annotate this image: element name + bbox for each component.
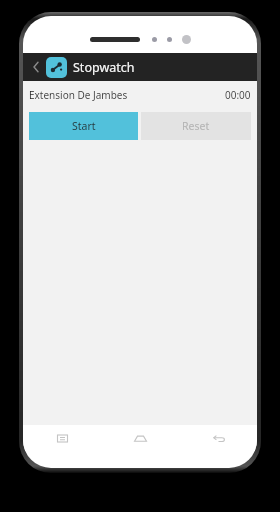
- button[interactable]: Back: [179, 425, 257, 451]
- button[interactable]: Home: [101, 425, 179, 451]
- staticText: Start: [72, 119, 96, 133]
- staticText: 00:00: [225, 88, 251, 102]
- button[interactable]: Reset: [141, 112, 251, 140]
- button[interactable]: Navigate up: [26, 57, 46, 77]
- staticText: Stopwatch: [73, 59, 135, 76]
- button[interactable]: Start: [29, 112, 138, 140]
- button[interactable]: Recents: [23, 425, 101, 451]
- staticText: Reset: [182, 119, 210, 133]
- staticText: Extension De Jambes: [29, 88, 128, 102]
